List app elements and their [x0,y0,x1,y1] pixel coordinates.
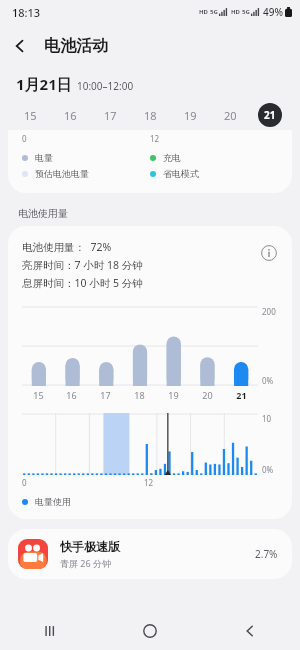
button[interactable]: 19 [170,100,210,130]
staticText: 10 [262,413,272,424]
staticText: 19 [184,108,197,123]
staticText: 15 [24,108,37,123]
staticText: 5G [242,8,250,16]
staticText: 充电 [163,152,181,163]
staticText: 电量 [35,152,53,163]
button[interactable]: Information [256,240,282,266]
staticText: 息屏时间：10 小时 5 分钟 [22,276,143,290]
button[interactable]: 20 [210,100,250,130]
staticText: 21 [264,108,276,122]
staticText: 17 [100,389,111,401]
button[interactable]: Back [0,26,40,66]
staticText: 0 [22,133,150,144]
button[interactable]: 18 [130,100,170,130]
staticText: 电池使用量： 72% [22,240,112,254]
staticText: 19 [168,389,179,401]
staticText: 1月21日 [16,74,72,94]
staticText: 10:00–12:00 [77,79,134,93]
staticText: 0 [22,477,27,488]
button[interactable]: Home [100,612,200,650]
staticText: 20 [202,389,213,401]
staticText: 12 [150,133,278,144]
staticText: 0% [262,375,274,386]
staticText: HD [199,8,208,16]
staticText: 电池活动 [44,36,108,56]
staticText: 15 [33,389,44,401]
button[interactable]: 0 [8,130,292,193]
button[interactable]: 17 [90,100,130,130]
staticText: 18 [144,108,157,123]
button[interactable]: Recents [0,612,100,650]
staticText: 亮屏时间：7 小时 18 分钟 [22,258,143,272]
staticText: 17 [104,108,117,123]
button[interactable]: Back [0,24,300,68]
staticText: 电量使用 [35,496,71,507]
button[interactable]: Back [200,612,300,650]
staticText: 电池使用量 [18,207,68,220]
staticText: 16 [66,389,77,401]
staticText: 49% [263,5,283,19]
staticText: 12 [144,477,154,488]
staticText: 21 [236,389,247,401]
staticText: 18:13 [12,5,41,20]
staticText: 预估电池电量 [35,168,89,179]
staticText: 青屏 26 分钟 [60,557,111,569]
button[interactable]: 16 [50,100,90,130]
staticText: 18 [134,389,145,401]
staticText: 20 [224,108,237,123]
staticText: 16 [64,108,77,123]
staticText: 省电模式 [163,168,199,179]
staticText: 200 [262,306,276,317]
staticText: HD [231,8,240,16]
button[interactable]: 21 [250,100,290,130]
staticText: 5G [210,8,218,16]
button[interactable]: 15 [10,100,50,130]
staticText: 2.7% [255,547,278,561]
button[interactable]: 快手极速版 [8,529,292,579]
staticText: 快手极速版 [60,539,120,554]
staticText: 0% [262,464,274,475]
